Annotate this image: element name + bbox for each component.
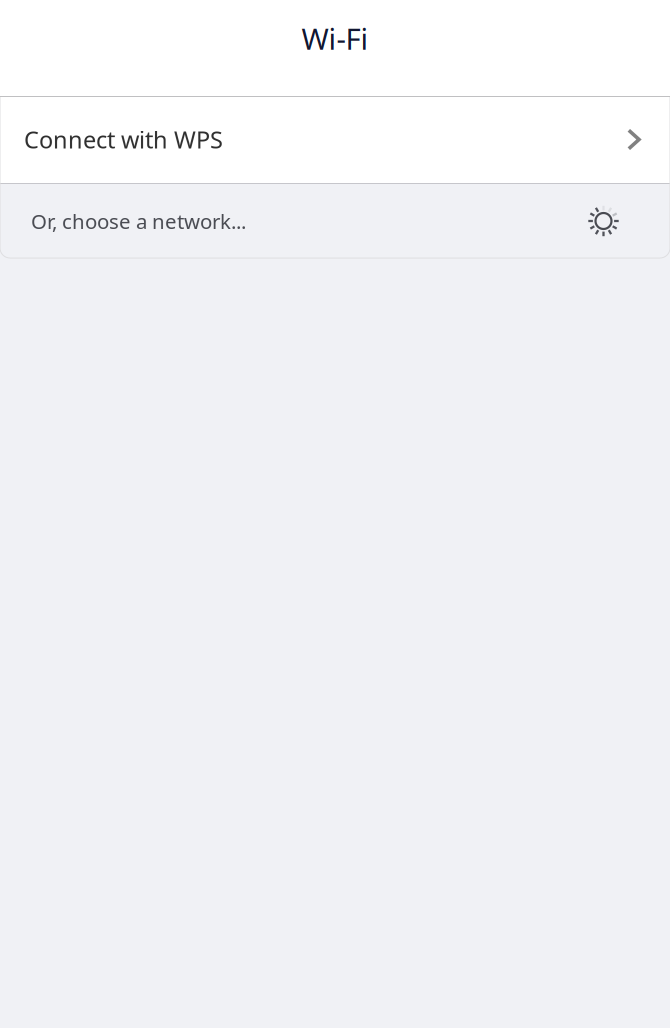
button[interactable]: Connect with WPS bbox=[0, 96, 670, 183]
staticText: Connect with WPS bbox=[24, 123, 223, 155]
staticText: Or, choose a network... bbox=[31, 207, 246, 235]
staticText: Wi-Fi bbox=[301, 19, 368, 58]
